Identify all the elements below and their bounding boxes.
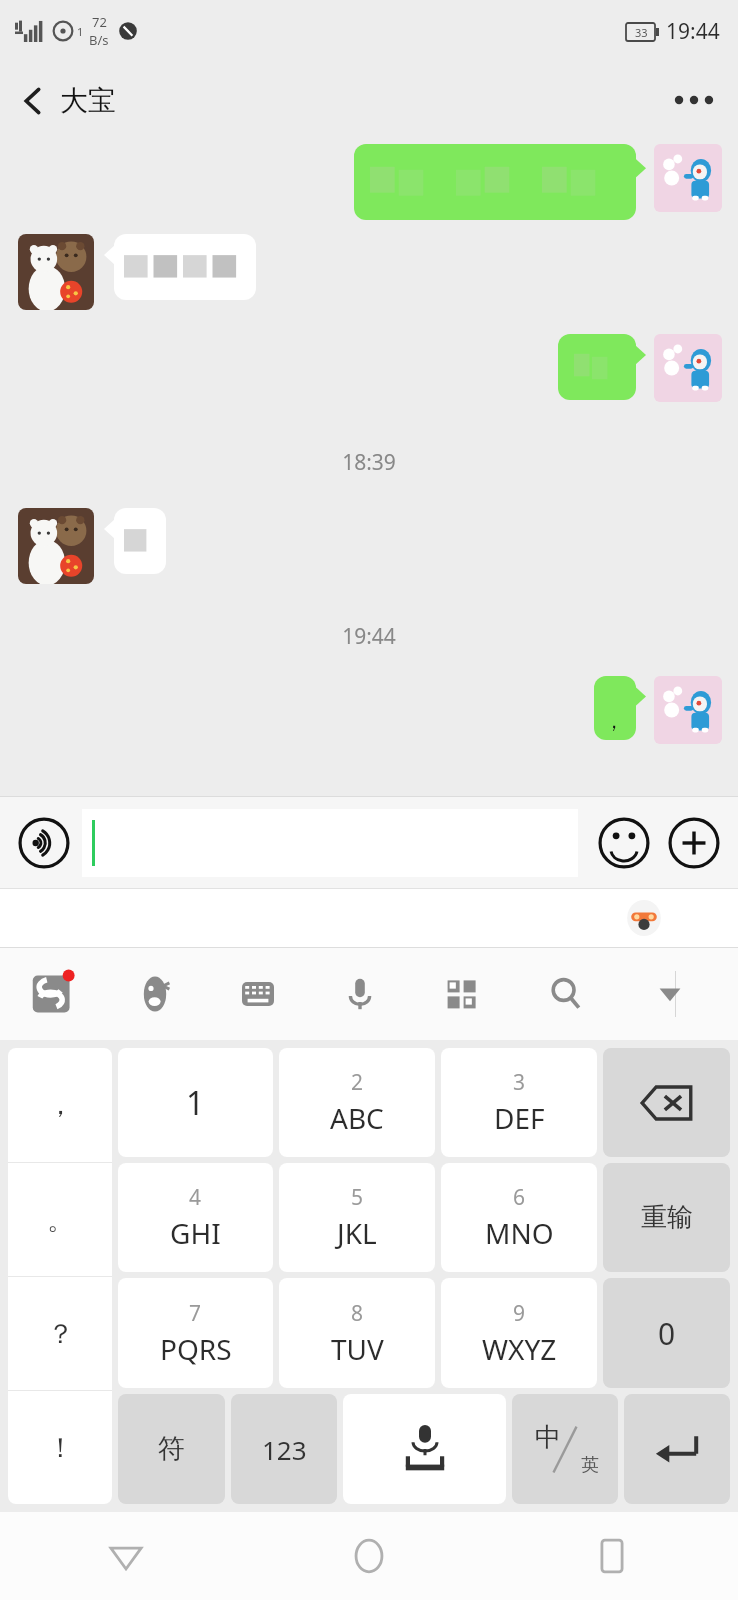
staticText: 5: [351, 1183, 364, 1212]
button[interactable]: 2: [279, 1048, 435, 1157]
button[interactable]: [104, 508, 166, 574]
button[interactable]: [654, 676, 722, 744]
button[interactable]: 5: [279, 1163, 435, 1272]
staticText: 19:44: [0, 622, 738, 651]
button[interactable]: [18, 234, 94, 310]
button[interactable]: 3: [441, 1048, 597, 1157]
staticText: 8: [351, 1299, 364, 1328]
staticText: 72: [92, 13, 107, 31]
staticText: ，: [604, 709, 624, 734]
button[interactable]: Sticker: [621, 895, 667, 941]
button[interactable]: 重输: [603, 1163, 730, 1272]
staticText: 6: [513, 1183, 526, 1212]
button[interactable]: More functions: [662, 811, 726, 875]
button[interactable]: 123: [231, 1394, 337, 1504]
staticText: 18:39: [0, 448, 738, 477]
button[interactable]: [104, 234, 256, 300]
staticText: PQRS: [160, 1330, 232, 1368]
button[interactable]: [654, 334, 722, 402]
button[interactable]: Functions: [435, 967, 489, 1021]
button[interactable]: 4: [118, 1163, 273, 1272]
button[interactable]: Search: [539, 967, 593, 1021]
button[interactable]: 0: [603, 1278, 730, 1388]
staticText: 3: [513, 1068, 526, 1097]
staticText: DEF: [494, 1099, 545, 1137]
staticText: 33: [635, 25, 648, 40]
button[interactable]: Enter: [624, 1394, 730, 1504]
button[interactable]: 8: [279, 1278, 435, 1388]
button[interactable]: Space: [343, 1394, 506, 1504]
staticText: ABC: [330, 1099, 384, 1137]
button[interactable]: 。: [8, 1163, 112, 1276]
staticText: 大宝: [60, 83, 116, 118]
button[interactable]: ！: [8, 1391, 112, 1504]
staticText: MNO: [485, 1214, 554, 1252]
staticText: ！: [47, 1431, 74, 1465]
button[interactable]: 6: [441, 1163, 597, 1272]
staticText: ，: [47, 1088, 74, 1122]
button[interactable]: Voice: [333, 967, 387, 1021]
staticText: 中: [535, 1421, 561, 1454]
button[interactable]: More options: [650, 76, 738, 124]
button[interactable]: [654, 144, 722, 212]
button[interactable]: ，: [8, 1048, 112, 1162]
button[interactable]: Recent apps: [576, 1520, 648, 1592]
button[interactable]: 中: [512, 1394, 618, 1504]
button[interactable]: Emoticons: [128, 967, 182, 1021]
staticText: 符: [158, 1432, 185, 1466]
staticText: 1: [186, 1081, 205, 1125]
staticText: TUV: [331, 1330, 384, 1368]
staticText: 英: [581, 1454, 599, 1477]
staticText: 4: [189, 1183, 202, 1212]
staticText: 19:44: [666, 17, 720, 46]
button[interactable]: Back: [0, 83, 126, 118]
staticText: 重输: [641, 1201, 693, 1234]
button[interactable]: [18, 508, 94, 584]
staticText: GHI: [170, 1214, 221, 1252]
button[interactable]: Sogou input: [22, 963, 84, 1025]
staticText: WXYZ: [482, 1330, 557, 1368]
button[interactable]: [82, 809, 578, 877]
button[interactable]: Backspace: [603, 1048, 730, 1157]
button[interactable]: 符: [118, 1394, 225, 1504]
staticText: 7: [189, 1299, 202, 1328]
button[interactable]: 9: [441, 1278, 597, 1388]
staticText: 1: [77, 24, 84, 39]
staticText: 2: [351, 1068, 364, 1097]
button[interactable]: Keyboard layout: [231, 967, 285, 1021]
button[interactable]: ，: [594, 676, 646, 740]
staticText: 。: [47, 1203, 74, 1237]
staticText: JKL: [337, 1214, 377, 1252]
button[interactable]: 7: [118, 1278, 273, 1388]
button[interactable]: [354, 144, 646, 220]
staticText: B/s: [89, 31, 109, 49]
button[interactable]: ？: [8, 1277, 112, 1390]
button[interactable]: [558, 334, 646, 400]
staticText: 123: [262, 1432, 307, 1467]
button[interactable]: Back: [90, 1520, 162, 1592]
staticText: 0: [658, 1313, 676, 1354]
button[interactable]: Hide keyboard: [643, 967, 697, 1021]
staticText: ？: [47, 1317, 74, 1351]
button[interactable]: 1: [118, 1048, 273, 1157]
button[interactable]: Home: [333, 1520, 405, 1592]
staticText: 9: [513, 1299, 526, 1328]
button[interactable]: Voice input: [12, 811, 76, 875]
button[interactable]: Emoji: [592, 811, 656, 875]
